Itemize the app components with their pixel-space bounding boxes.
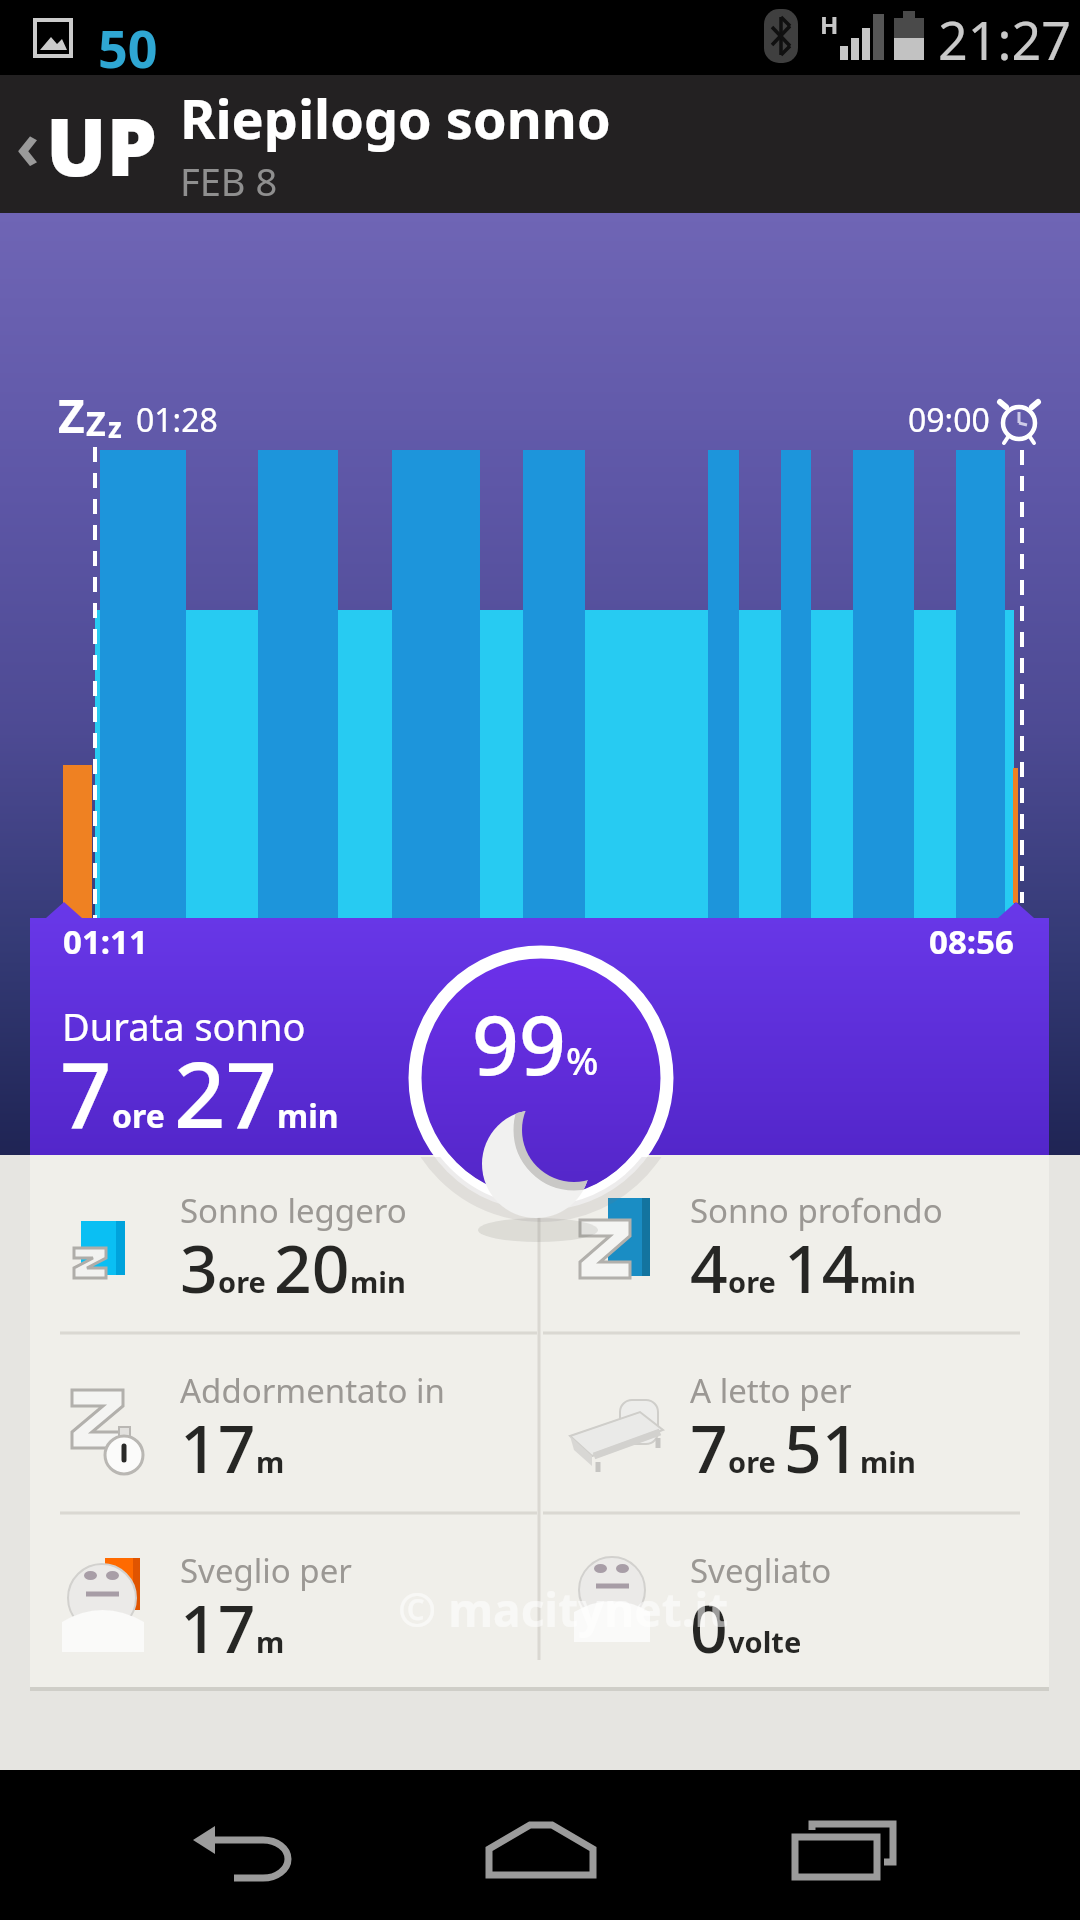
staticText: m	[256, 1622, 285, 1661]
staticText: Z	[58, 384, 85, 447]
staticText: Sonno profondo	[690, 1188, 943, 1233]
staticText: © macitynet.it	[398, 1578, 729, 1641]
staticText: 27	[174, 1032, 277, 1155]
staticText: 3	[180, 1222, 218, 1312]
staticText: 09:00	[908, 398, 990, 442]
staticText: ‹	[16, 101, 40, 188]
button[interactable]: ‹	[0, 75, 158, 213]
staticText: Addormentato in	[180, 1368, 445, 1413]
staticText: min	[860, 1442, 916, 1481]
staticText: 01:28	[136, 398, 218, 442]
staticText: 17	[180, 1402, 256, 1492]
staticText: 20	[274, 1222, 350, 1312]
staticText: Sveglio per	[180, 1548, 352, 1593]
staticText: %	[566, 1034, 599, 1086]
staticText: ore	[112, 1094, 174, 1138]
staticText: A letto per	[690, 1368, 852, 1413]
staticText: z	[108, 408, 122, 446]
staticText: UP	[46, 90, 158, 199]
staticText: Sonno leggero	[180, 1188, 407, 1233]
staticText: min	[350, 1262, 406, 1301]
staticText: 21:27	[938, 4, 1071, 75]
staticText: ore	[728, 1262, 784, 1301]
staticText: FEB 8	[180, 155, 278, 207]
staticText: 08:56	[929, 919, 1014, 964]
button[interactable]	[720, 1770, 1080, 1920]
staticText: 4	[690, 1222, 728, 1312]
staticText: min	[860, 1262, 916, 1301]
staticText: 7	[690, 1402, 728, 1492]
staticText: 51	[784, 1402, 860, 1492]
staticText: volte	[728, 1622, 802, 1661]
button[interactable]	[360, 1770, 720, 1920]
staticText: H	[820, 8, 839, 41]
staticText: Riepilogo sonno	[180, 81, 611, 155]
staticText: 01:11	[63, 919, 148, 964]
staticText: 14	[784, 1222, 860, 1312]
staticText: 0	[690, 1582, 728, 1672]
staticText: ore	[728, 1442, 784, 1481]
staticText: Z	[86, 400, 106, 446]
staticText: 7	[60, 1032, 112, 1155]
staticText: min	[277, 1094, 339, 1138]
staticText: ore	[218, 1262, 274, 1301]
staticText: m	[256, 1442, 285, 1481]
staticText: Svegliato	[690, 1548, 832, 1593]
button[interactable]	[0, 1770, 360, 1920]
staticText: Durata sonno	[62, 1000, 306, 1052]
staticText: 99	[472, 987, 566, 1099]
staticText: 50	[98, 12, 158, 83]
staticText: 17	[180, 1582, 256, 1672]
